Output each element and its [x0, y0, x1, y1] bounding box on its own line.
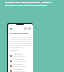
button[interactable]	[10, 58, 31, 63]
button[interactable]	[10, 63, 31, 68]
button[interactable]: App logo	[10, 28, 12, 30]
staticText: Personal Balance	[10, 32, 29, 35]
button[interactable]	[10, 53, 31, 58]
staticText: Manage Your Personal Finance, Anytime, A…	[5, 1, 58, 7]
button[interactable]	[10, 68, 31, 72]
button[interactable]: Profile	[28, 27, 31, 30]
button[interactable]: Notifications	[24, 27, 27, 30]
